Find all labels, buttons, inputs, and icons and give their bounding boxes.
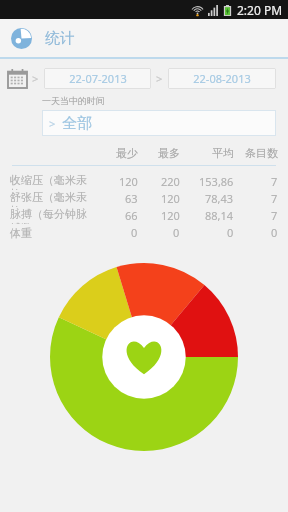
staticText: 平均 xyxy=(212,146,234,160)
button[interactable]: > xyxy=(42,110,276,136)
staticText: 63 xyxy=(125,191,138,206)
staticText: 最少 xyxy=(116,146,138,160)
staticText: 120 xyxy=(161,208,180,223)
button[interactable]: 22-07-2013 xyxy=(44,68,151,89)
staticText: 体重 xyxy=(10,226,94,240)
staticText: 全部 xyxy=(62,114,92,133)
staticText: > xyxy=(49,116,56,131)
staticText: 0 xyxy=(227,225,234,240)
staticText: 153,86 xyxy=(199,174,234,189)
staticText: 22-08-2013 xyxy=(193,71,251,86)
staticText: 统计 xyxy=(45,29,75,48)
staticText: 7 xyxy=(271,191,278,206)
button[interactable]: Blood pressure distribution chart xyxy=(50,263,238,451)
staticText: 78,43 xyxy=(205,191,234,206)
staticText: 220 xyxy=(161,174,180,189)
staticText: 脉搏（每分钟脉搏数） xyxy=(10,207,94,224)
staticText: 7 xyxy=(271,174,278,189)
staticText: 22-07-2013 xyxy=(69,71,127,86)
staticText: 7 xyxy=(271,208,278,223)
staticText: 0 xyxy=(271,225,278,240)
button[interactable]: 22-08-2013 xyxy=(168,68,276,89)
staticText: 0 xyxy=(173,225,180,240)
staticText: 条目数 xyxy=(245,146,278,160)
staticText: 舒张压（毫米汞柱） xyxy=(10,190,94,207)
staticText: 88,14 xyxy=(205,208,234,223)
staticText: > xyxy=(156,71,163,86)
button[interactable]: 统计 xyxy=(0,19,288,57)
staticText: 一天当中的时间 xyxy=(42,95,105,106)
staticText: > xyxy=(32,71,39,86)
staticText: 120 xyxy=(119,174,138,189)
staticText: 2:20 PM xyxy=(237,2,283,18)
staticText: 66 xyxy=(125,208,138,223)
staticText: 最多 xyxy=(158,146,180,160)
staticText: 收缩压（毫米汞柱） xyxy=(10,173,94,190)
staticText: 120 xyxy=(161,191,180,206)
staticText: 0 xyxy=(131,225,138,240)
